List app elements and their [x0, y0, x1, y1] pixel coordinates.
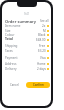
staticText: Visa	[40, 56, 46, 60]
button[interactable]: $48.00	[2, 37, 51, 42]
staticText: Size	[5, 29, 11, 33]
button[interactable]: Cancel	[7, 82, 21, 88]
button[interactable]: Delivery	[2, 66, 51, 71]
staticText: Cancel	[10, 83, 19, 87]
staticText: Home	[37, 62, 46, 66]
staticText: Delivery	[5, 67, 17, 71]
staticText: Shipping	[5, 44, 18, 48]
staticText: Total	[5, 37, 13, 41]
staticText: Free	[39, 44, 46, 48]
button[interactable]: Size	[2, 28, 51, 33]
button[interactable]: See all	[40, 19, 49, 23]
staticText: Colour	[5, 33, 15, 37]
staticText: 2 days	[37, 67, 46, 71]
staticText: M	[43, 29, 46, 33]
button[interactable]: Colour	[2, 32, 51, 37]
button[interactable]: Payment	[2, 55, 51, 60]
button[interactable]: Confirm	[26, 82, 50, 88]
button[interactable]: Shipping	[2, 43, 51, 48]
button[interactable]: Item name	[2, 23, 51, 28]
staticText: $48.00	[36, 38, 46, 42]
staticText: Black	[38, 33, 46, 37]
staticText: Address	[5, 62, 17, 66]
staticText: Taxes	[5, 49, 13, 53]
button[interactable]: Address	[2, 61, 51, 66]
staticText: Payment	[5, 56, 18, 60]
staticText: 2x	[42, 24, 46, 28]
button[interactable]: Taxes	[2, 48, 51, 53]
staticText: Item name	[5, 24, 21, 28]
staticText: 9:41	[24, 12, 30, 16]
staticText: See all	[40, 19, 49, 23]
staticText: $3.20	[38, 49, 46, 53]
staticText: Confirm	[33, 83, 44, 87]
staticText: Order summary	[5, 19, 36, 24]
